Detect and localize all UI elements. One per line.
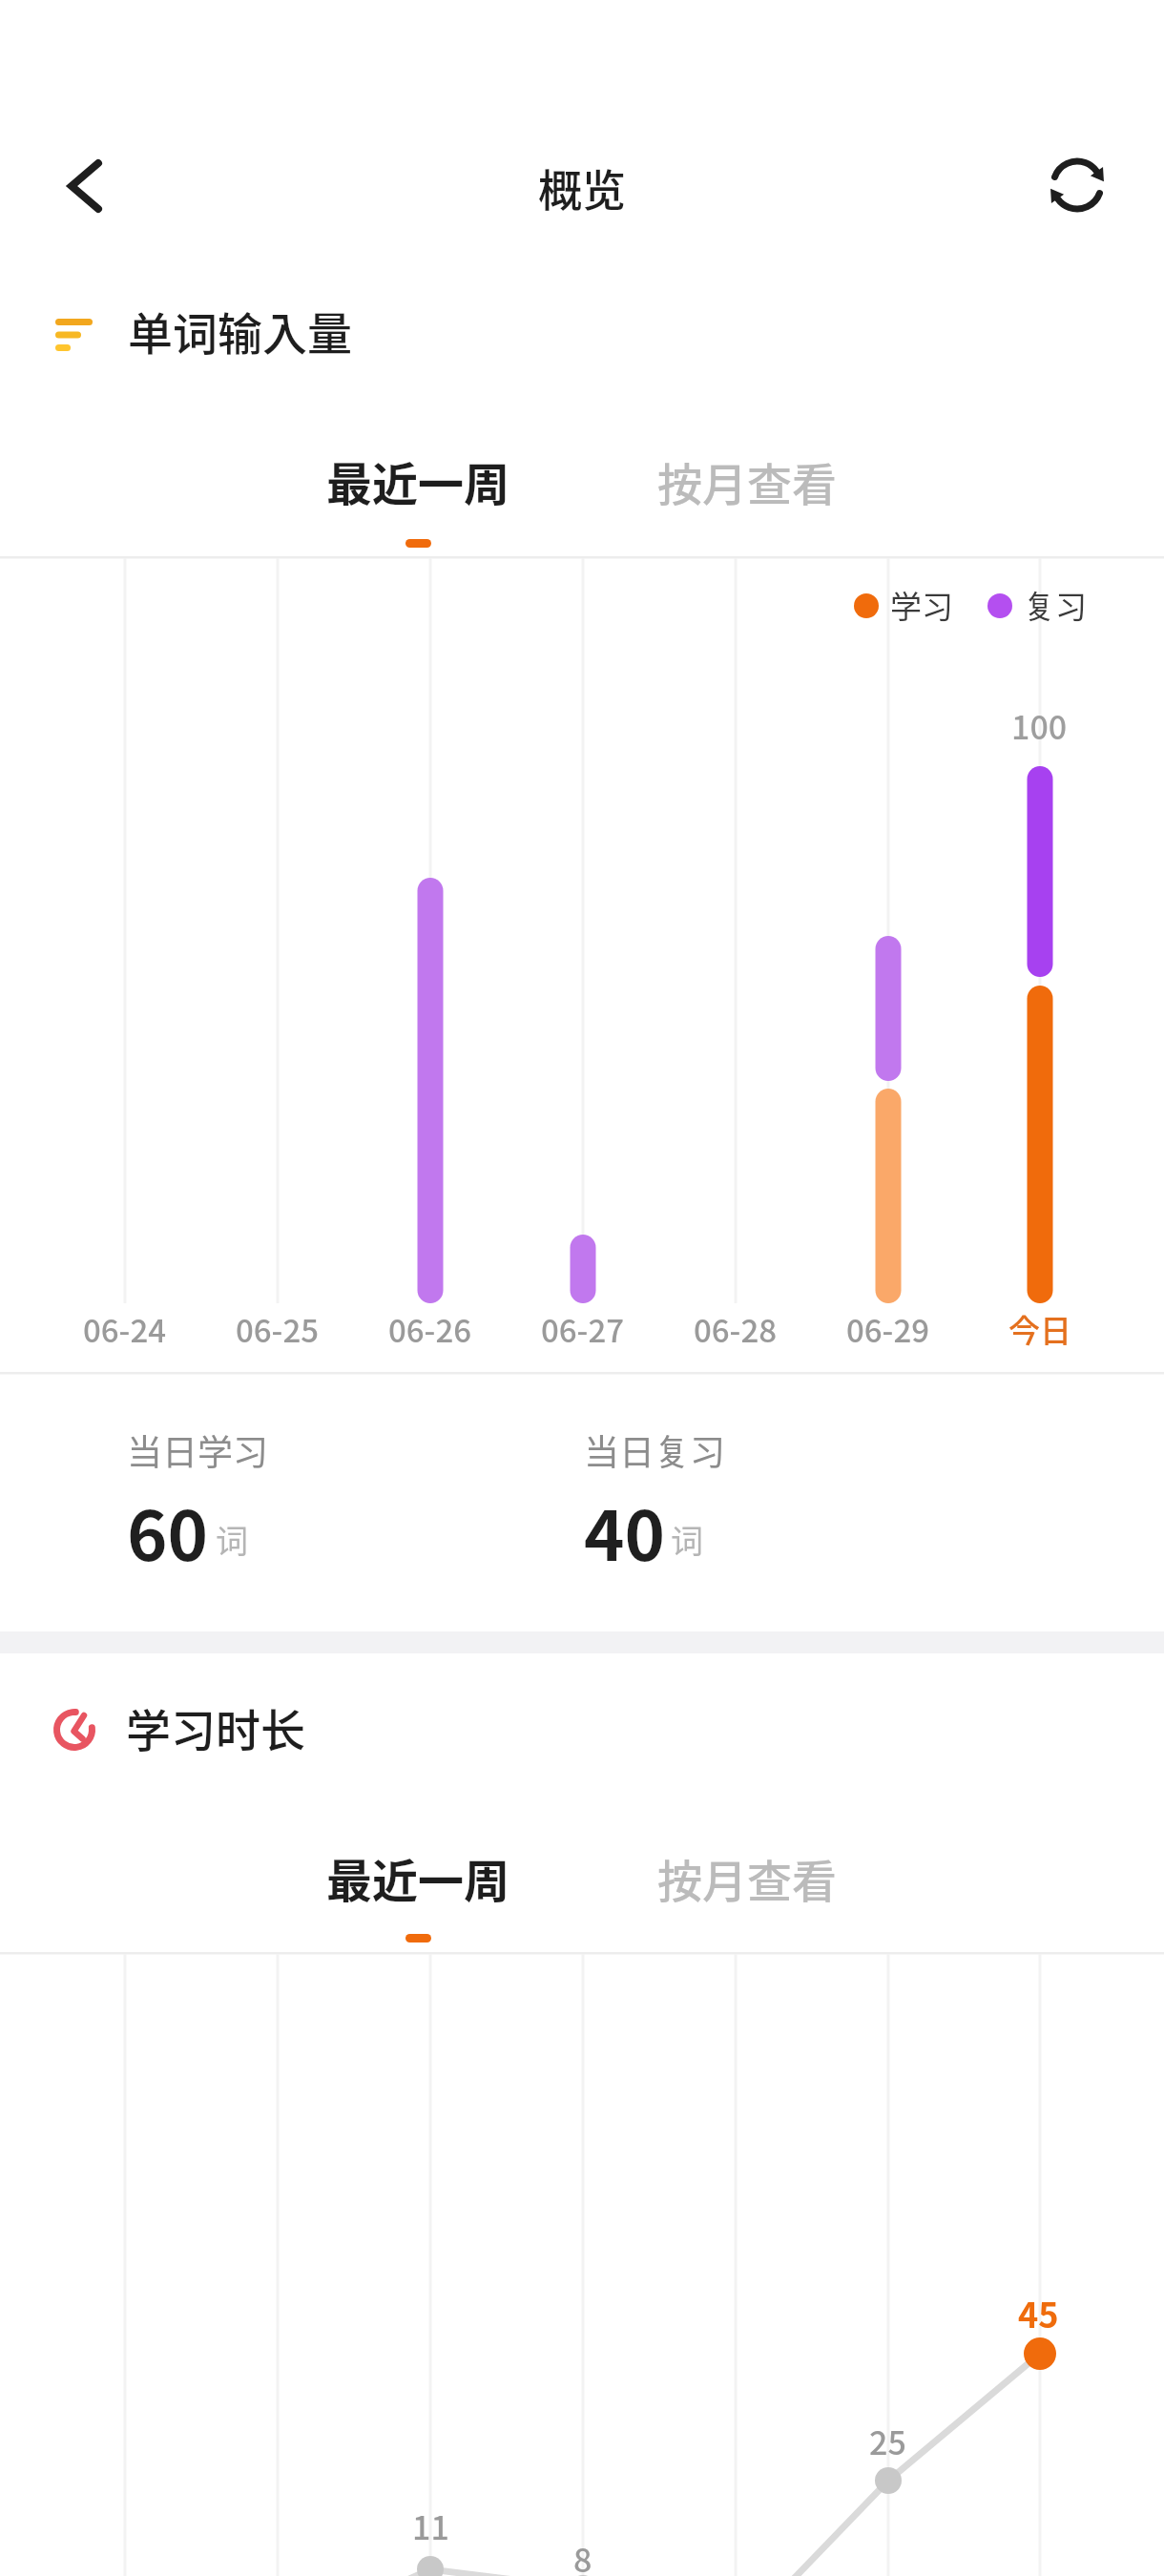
staticText: 06-28: [694, 1306, 778, 1352]
staticText: 06-25: [236, 1306, 320, 1352]
button[interactable]: 最近一周: [284, 433, 551, 529]
staticText: 复习: [1024, 582, 1087, 628]
button[interactable]: [1039, 147, 1115, 223]
staticText: 06-29: [846, 1306, 930, 1352]
staticText: 单词输入量: [128, 298, 352, 363]
staticText: 学习: [890, 582, 953, 628]
staticText: 06-26: [388, 1306, 472, 1352]
staticText: 06-27: [541, 1306, 625, 1352]
staticText: 最近一周: [326, 447, 510, 514]
staticText: 60: [127, 1481, 208, 1580]
staticText: 06-24: [83, 1306, 167, 1352]
button[interactable]: 按月查看: [613, 1830, 881, 1925]
staticText: 25: [869, 2418, 906, 2464]
staticText: 概览: [538, 156, 626, 219]
staticText: 40: [584, 1481, 665, 1580]
staticText: 11: [412, 2503, 449, 2549]
staticText: 45: [1018, 2288, 1059, 2337]
staticText: 按月查看: [657, 1845, 837, 1910]
staticText: 学习时长: [126, 1694, 305, 1759]
button[interactable]: 最近一周: [284, 1830, 551, 1925]
staticText: 8: [573, 2535, 592, 2576]
staticText: 按月查看: [657, 448, 837, 513]
staticText: 100: [1011, 702, 1068, 749]
staticText: 当日学习: [127, 1424, 268, 1476]
staticText: 最近一周: [326, 1844, 510, 1911]
staticText: 今日: [1008, 1306, 1071, 1352]
staticText: 词: [216, 1516, 248, 1563]
button[interactable]: [52, 148, 129, 224]
staticText: 当日复习: [584, 1424, 725, 1476]
staticText: 词: [671, 1516, 703, 1563]
button[interactable]: 按月查看: [613, 433, 881, 529]
